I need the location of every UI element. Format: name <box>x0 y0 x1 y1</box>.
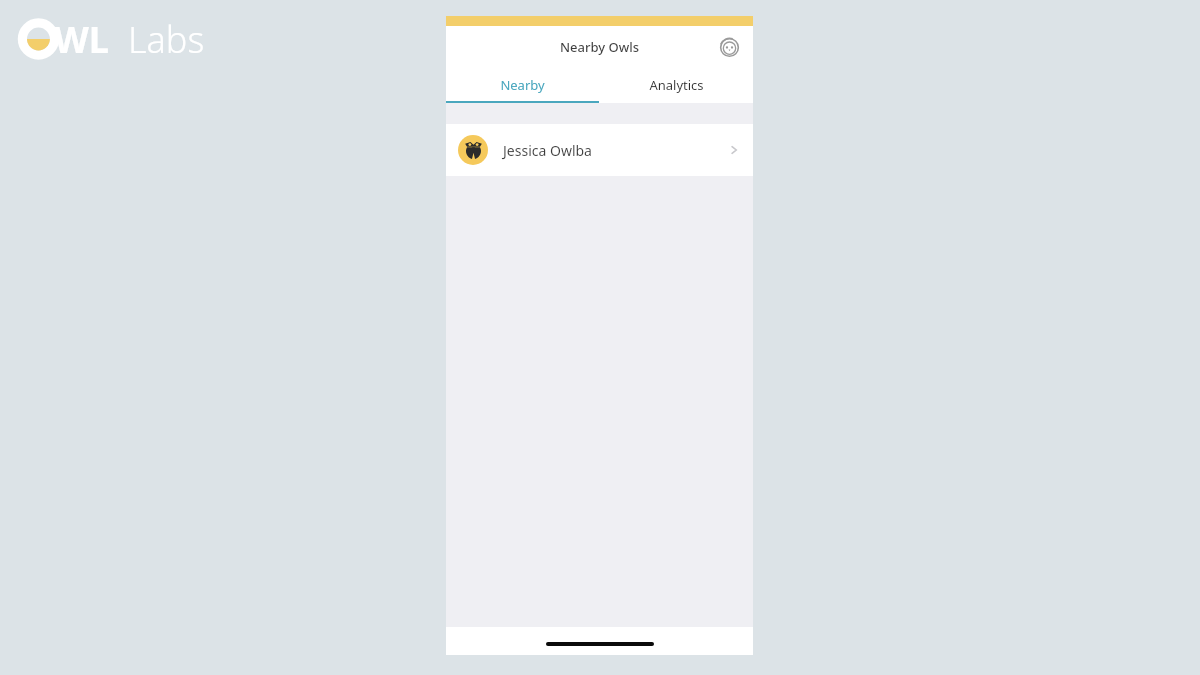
staticText: Analytics <box>649 76 704 94</box>
staticText: Labs <box>128 15 205 59</box>
staticText: Nearby Owls <box>560 38 640 56</box>
button[interactable]: Analytics <box>599 68 753 101</box>
staticText: WL <box>54 15 109 59</box>
button[interactable]: Nearby <box>446 68 599 101</box>
staticText: Nearby <box>500 76 545 94</box>
button[interactable]: Jessica Owlba <box>446 124 753 176</box>
staticText: Jessica Owlba <box>503 141 592 160</box>
button[interactable]: Owl device settings <box>714 32 744 62</box>
